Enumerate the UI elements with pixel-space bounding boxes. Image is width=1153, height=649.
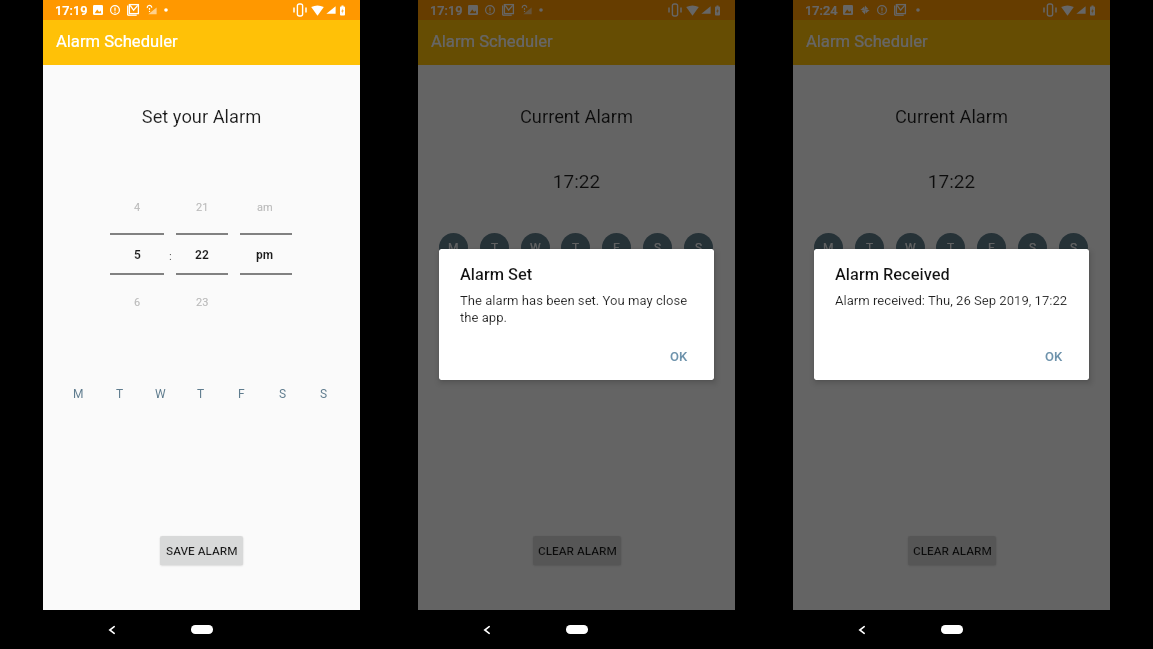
button[interactable]: F: [227, 379, 256, 408]
staticText: Set your Alarm: [43, 106, 360, 127]
staticText: T: [116, 387, 124, 401]
button[interactable]: Home: [566, 625, 588, 634]
button[interactable]: W: [521, 233, 550, 262]
staticText: S: [320, 387, 328, 401]
staticText: T: [491, 241, 499, 255]
button[interactable]: S: [684, 233, 713, 262]
staticText: 17:22: [793, 170, 1110, 192]
button[interactable]: M: [439, 233, 468, 262]
staticText: CLEAR ALARM: [538, 544, 617, 558]
button[interactable]: T: [936, 233, 965, 262]
button[interactable]: 4: [107, 198, 167, 216]
button[interactable]: S: [1059, 233, 1088, 262]
staticText: Alarm Set: [460, 265, 533, 284]
button[interactable]: S: [643, 233, 672, 262]
button[interactable]: S: [1018, 233, 1047, 262]
button[interactable]: pm: [235, 245, 295, 265]
staticText: 21: [196, 201, 209, 214]
button[interactable]: W: [896, 233, 925, 262]
button[interactable]: 5: [107, 245, 167, 265]
staticText: 17:22: [418, 170, 735, 192]
button[interactable]: T: [561, 233, 590, 262]
button[interactable]: 22: [172, 245, 232, 265]
staticText: SAVE ALARM: [166, 544, 238, 558]
button[interactable]: 6: [107, 293, 167, 311]
staticText: OK: [670, 349, 688, 364]
staticText: pm: [256, 248, 274, 262]
staticText: W: [530, 241, 541, 255]
staticText: S: [1029, 241, 1037, 255]
staticText: 5: [134, 248, 141, 262]
staticText: Current Alarm: [418, 106, 735, 127]
staticText: F: [613, 241, 620, 255]
button[interactable]: am: [235, 198, 295, 216]
staticText: M: [448, 241, 459, 255]
staticText: M: [73, 387, 84, 401]
staticText: 6: [134, 296, 141, 309]
staticText: S: [654, 241, 662, 255]
staticText: 23: [196, 296, 209, 309]
button[interactable]: M: [64, 379, 93, 408]
staticText: F: [238, 387, 245, 401]
button[interactable]: T: [855, 233, 884, 262]
button[interactable]: T: [105, 379, 134, 408]
staticText: Current Alarm: [793, 106, 1110, 127]
staticText: M: [823, 241, 834, 255]
button[interactable]: 21: [172, 198, 232, 216]
button[interactable]: Back: [99, 617, 125, 643]
button[interactable]: Home: [941, 625, 963, 634]
staticText: 4: [134, 201, 141, 214]
staticText: W: [155, 387, 166, 401]
button[interactable]: S: [268, 379, 297, 408]
button[interactable]: T: [480, 233, 509, 262]
staticText: The alarm has been set. You may close th…: [460, 293, 700, 325]
staticText: 22: [195, 248, 209, 262]
button[interactable]: OK: [1036, 343, 1072, 369]
staticText: OK: [1045, 349, 1063, 364]
staticText: CLEAR ALARM: [913, 544, 992, 558]
staticText: Alarm Scheduler: [431, 32, 553, 51]
staticText: T: [866, 241, 874, 255]
button[interactable]: W: [146, 379, 175, 408]
staticText: T: [947, 241, 955, 255]
staticText: 17:19: [55, 3, 88, 18]
staticText: Alarm Received: [835, 265, 950, 284]
staticText: 17:19: [430, 3, 463, 18]
staticText: :: [169, 249, 172, 262]
button[interactable]: OK: [661, 343, 697, 369]
button[interactable]: T: [186, 379, 215, 408]
button[interactable]: Back: [849, 617, 875, 643]
staticText: S: [695, 241, 703, 255]
button[interactable]: CLEAR ALARM: [533, 536, 621, 565]
staticText: T: [197, 387, 205, 401]
staticText: Alarm received: Thu, 26 Sep 2019, 17:22: [835, 293, 1075, 308]
staticText: S: [279, 387, 287, 401]
button[interactable]: F: [977, 233, 1006, 262]
staticText: W: [905, 241, 916, 255]
button[interactable]: M: [814, 233, 843, 262]
staticText: Alarm Scheduler: [56, 32, 178, 51]
button[interactable]: CLEAR ALARM: [908, 536, 996, 565]
staticText: am: [257, 201, 273, 214]
staticText: 17:24: [805, 3, 838, 18]
button[interactable]: Home: [191, 625, 213, 634]
button[interactable]: F: [602, 233, 631, 262]
staticText: T: [572, 241, 580, 255]
button[interactable]: SAVE ALARM: [160, 536, 243, 565]
staticText: S: [1070, 241, 1078, 255]
button[interactable]: Back: [474, 617, 500, 643]
staticText: Alarm Scheduler: [806, 32, 928, 51]
staticText: F: [988, 241, 995, 255]
button[interactable]: S: [309, 379, 338, 408]
button[interactable]: 23: [172, 293, 232, 311]
